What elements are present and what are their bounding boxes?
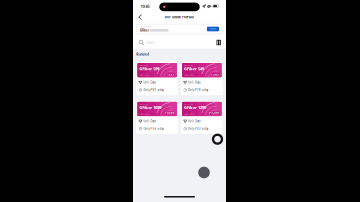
button[interactable]: Back — [136, 13, 144, 22]
staticText: P549 — [211, 73, 219, 76]
staticText: GFiber — [140, 29, 149, 32]
staticText: Unli Data — [143, 119, 155, 123]
staticText: Unli Data — [188, 119, 200, 123]
staticText: GFiber 549 — [184, 66, 204, 71]
staticText: Only P43 a day — [188, 127, 208, 130]
staticText: Search — [147, 41, 155, 44]
staticText: P1699 — [164, 111, 174, 115]
button[interactable]: UNLIMITED — [181, 101, 223, 134]
staticText: UNLIMITED — [139, 64, 148, 66]
button[interactable]: UNLIMITED — [181, 62, 223, 95]
staticText: Valid for 30 Days — [139, 113, 150, 115]
staticText: GFiber 1699 — [139, 105, 161, 110]
staticText: You're buying for — [140, 26, 152, 28]
staticText: Valid for 7 Days — [184, 74, 194, 76]
staticText: Only P78 a day — [188, 88, 208, 92]
button[interactable]: Filter — [216, 39, 222, 46]
staticText: UNLIMITED — [184, 64, 193, 66]
staticText: Featured — [136, 53, 149, 56]
staticText: UNLIMITED — [184, 103, 193, 105]
staticText: BUY GFIBER PREPAID — [165, 15, 194, 19]
staticText: UNLIMITED — [139, 103, 148, 105]
staticText: 10:45 — [140, 3, 149, 9]
button[interactable]: UNLIMITED — [136, 62, 178, 95]
button[interactable]: Change — [207, 27, 219, 31]
staticText: GFiber 599 — [139, 66, 159, 71]
staticText: Change — [210, 28, 216, 30]
staticText: P1299 — [209, 111, 219, 115]
staticText: P599 — [166, 73, 174, 76]
staticText: Only P56 a day — [143, 127, 163, 130]
staticText: Unli Data — [143, 81, 155, 84]
staticText: Unli Data — [188, 81, 200, 84]
staticText: Valid for 7 Days — [139, 74, 149, 76]
button[interactable]: UNLIMITED — [136, 101, 178, 134]
staticText: Valid for 30 Days — [184, 113, 195, 115]
button[interactable]: Chat support — [198, 167, 210, 178]
staticText: GFiber 1299 — [184, 105, 206, 110]
staticText: Only P85 a day — [143, 88, 163, 92]
